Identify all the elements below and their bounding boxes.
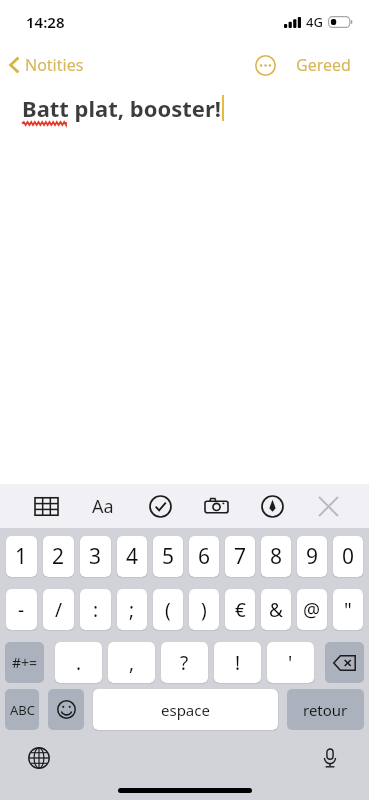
staticText: Notities [25, 54, 84, 76]
staticText: , [129, 650, 135, 676]
staticText: 14:28 [26, 12, 65, 32]
button[interactable]: Markup [252, 486, 292, 526]
staticText: 1 [15, 542, 28, 571]
button[interactable]: Checklist [140, 486, 180, 526]
button[interactable]: 7 [225, 536, 255, 577]
button[interactable]: & [261, 589, 291, 630]
button[interactable]: ' [267, 642, 314, 683]
button[interactable]: More options [248, 48, 282, 82]
staticText: 7 [234, 542, 247, 571]
button[interactable]: 5 [153, 536, 183, 577]
button[interactable]: / [43, 589, 74, 630]
button[interactable]: Insert table [26, 486, 66, 526]
staticText: " [344, 597, 352, 623]
staticText: . [76, 650, 82, 676]
staticText: @ [303, 597, 321, 623]
staticText: 5 [162, 542, 175, 571]
button[interactable]: € [225, 589, 255, 630]
staticText: - [18, 597, 25, 623]
staticText: ' [288, 650, 293, 676]
button[interactable]: ? [161, 642, 208, 683]
staticText: / [55, 597, 63, 623]
button[interactable]: 0 [333, 536, 363, 577]
button[interactable]: Gereed [291, 47, 356, 83]
button[interactable]: ABC [5, 689, 39, 730]
staticText: ) [201, 597, 207, 623]
staticText: 8 [270, 542, 283, 571]
staticText: Aa [92, 494, 114, 519]
button[interactable]: - [6, 589, 37, 630]
button[interactable]: Backspace [325, 642, 364, 683]
button[interactable]: Close keyboard [308, 486, 348, 526]
staticText: & [269, 597, 283, 623]
staticText: espace [161, 700, 210, 720]
staticText: 4G [306, 13, 323, 31]
staticText: retour [303, 700, 348, 720]
staticText: 2 [52, 542, 65, 571]
button[interactable]: . [55, 642, 102, 683]
button[interactable]: 9 [297, 536, 327, 577]
button[interactable]: Change keyboard [25, 745, 53, 771]
button[interactable]: ) [189, 589, 219, 630]
button[interactable]: espace [93, 689, 278, 730]
staticText: ? [180, 650, 189, 676]
staticText: ! [235, 650, 241, 676]
button[interactable]: : [80, 589, 111, 630]
button[interactable]: 4 [117, 536, 147, 577]
button[interactable]: Aa [83, 486, 123, 526]
staticText: #+= [12, 653, 38, 672]
button[interactable]: ! [214, 642, 261, 683]
button[interactable]: ; [117, 589, 147, 630]
staticText: Batt plat, booster! [22, 93, 221, 123]
button[interactable]: Emoji [48, 689, 84, 730]
staticText: : [93, 597, 99, 623]
button[interactable]: #+= [5, 642, 44, 683]
staticText: Gereed [296, 54, 351, 76]
staticText: ( [165, 597, 171, 623]
staticText: 3 [89, 542, 102, 571]
button[interactable]: Camera [196, 486, 236, 526]
button[interactable]: retour [287, 689, 364, 730]
button[interactable]: Dictate [316, 745, 344, 771]
button[interactable]: Notities [0, 49, 92, 81]
button[interactable]: 2 [43, 536, 74, 577]
button[interactable]: 1 [6, 536, 37, 577]
staticText: 6 [198, 542, 211, 571]
staticText: ABC [10, 701, 35, 719]
button[interactable]: " [333, 589, 363, 630]
staticText: € [235, 597, 246, 623]
button[interactable]: 8 [261, 536, 291, 577]
button[interactable]: @ [297, 589, 327, 630]
button[interactable]: ( [153, 589, 183, 630]
staticText: ; [129, 597, 135, 623]
staticText: 9 [306, 542, 319, 571]
button[interactable]: , [108, 642, 155, 683]
staticText: 4 [126, 542, 139, 571]
staticText: 0 [342, 542, 355, 571]
button[interactable]: 3 [80, 536, 111, 577]
button[interactable]: 6 [189, 536, 219, 577]
